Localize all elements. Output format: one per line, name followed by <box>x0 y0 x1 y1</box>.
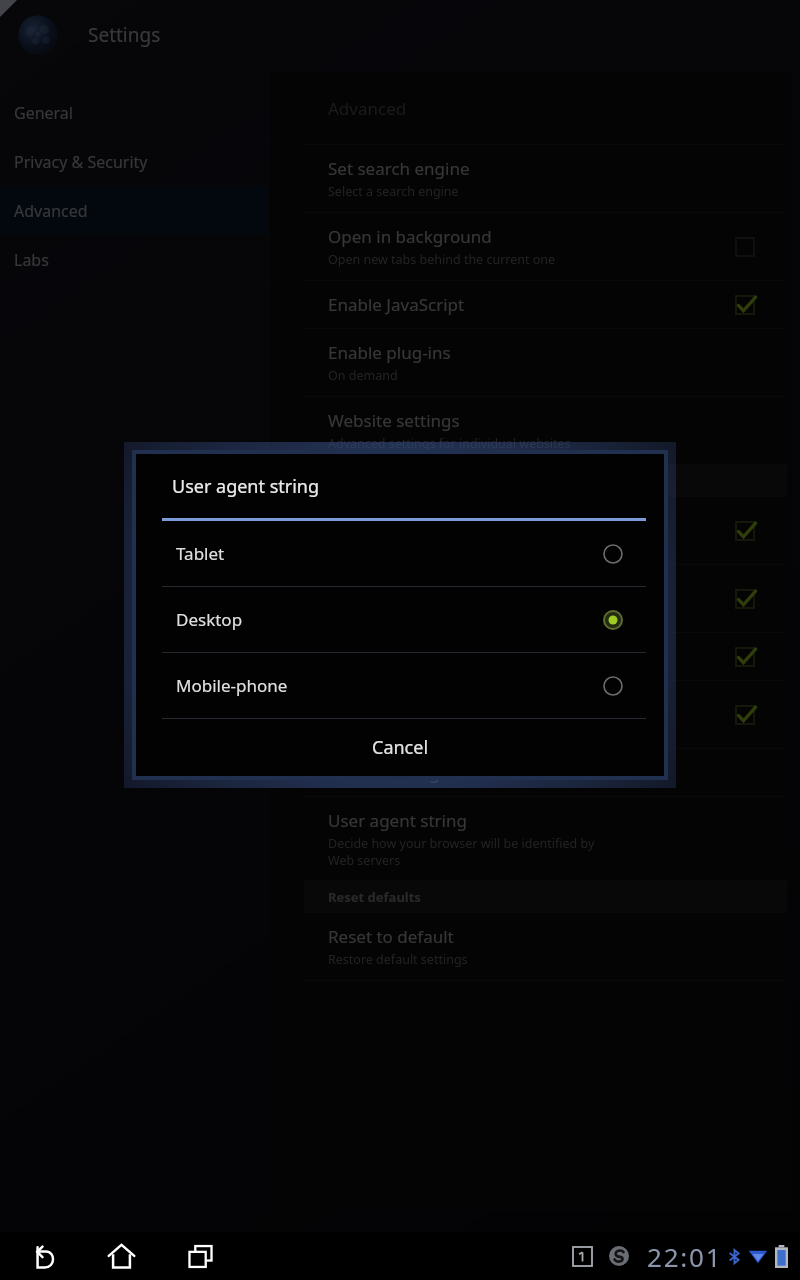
button[interactable]: Back <box>16 1232 68 1280</box>
button[interactable]: Desktop <box>136 587 664 653</box>
staticText: On demand <box>328 367 398 384</box>
staticText: Restore default settings <box>328 951 468 968</box>
button[interactable]: Tablet <box>136 521 664 587</box>
staticText: Enable JavaScript <box>328 293 465 316</box>
button[interactable]: Reset to default <box>270 913 792 981</box>
staticText: Show security warnings <box>328 577 517 600</box>
staticText: Website settings <box>328 409 460 432</box>
button[interactable]: Cancel <box>136 719 664 776</box>
button[interactable]: Load images <box>270 681 792 749</box>
staticText: Mobile-phone <box>176 674 602 697</box>
button[interactable]: Show security warnings <box>270 565 792 633</box>
button[interactable]: Labs <box>0 235 268 284</box>
button[interactable]: Mobile-phone <box>136 653 664 719</box>
staticText: User agent string <box>328 809 467 832</box>
button[interactable]: Recent apps <box>174 1232 226 1280</box>
staticText: Settings <box>88 22 161 48</box>
button[interactable]: General <box>0 88 268 137</box>
staticText: Tablet <box>176 542 602 565</box>
staticText: Open new tabs behind the current one <box>328 251 556 268</box>
staticText: Block pop-up windows <box>328 645 508 668</box>
button[interactable]: Set search engine <box>270 145 792 213</box>
staticText: Advanced <box>328 97 407 120</box>
staticText: Open in background <box>328 225 492 248</box>
button[interactable]: Enable plug-ins <box>270 329 792 397</box>
staticText: Reset defaults <box>328 888 421 906</box>
staticText: Privacy & Security <box>14 151 148 173</box>
staticText: User agent string <box>172 474 320 499</box>
staticText: Select a search engine <box>328 183 459 200</box>
staticText: Reset to default <box>328 925 454 948</box>
button[interactable]: Home <box>95 1232 147 1280</box>
button[interactable]: Advanced <box>0 186 268 235</box>
button[interactable]: Enable JavaScript <box>270 281 792 329</box>
staticText: Decide how your browser will be identifi… <box>328 835 595 868</box>
button[interactable]: Privacy & Security <box>0 137 268 186</box>
staticText: Cancel <box>372 735 429 760</box>
staticText: Desktop <box>176 608 602 631</box>
staticText: Enable plug-ins <box>328 341 451 364</box>
staticText: Advanced <box>14 200 88 222</box>
button[interactable]: Website settings <box>270 397 792 465</box>
staticText: 22:01 <box>647 1239 723 1274</box>
staticText: Set search engine <box>328 157 470 180</box>
staticText: Text encoding <box>328 761 440 784</box>
button[interactable]: Block pop-up windows <box>270 633 792 681</box>
staticText: Remember passwords <box>328 509 507 532</box>
button[interactable]: Remember passwords <box>270 497 792 565</box>
button[interactable]: Open in background <box>270 213 792 281</box>
staticText: Advanced settings for individual website… <box>328 435 571 452</box>
button[interactable]: Text encoding <box>270 749 792 797</box>
button[interactable]: User agent string <box>270 797 792 881</box>
staticText: General <box>14 102 73 124</box>
staticText: Labs <box>14 249 49 271</box>
